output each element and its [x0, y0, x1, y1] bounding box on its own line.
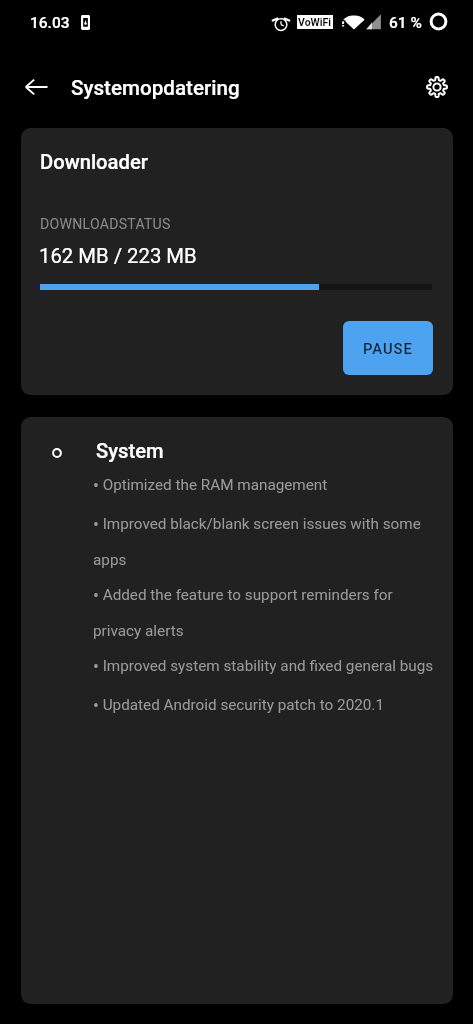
staticText: 61 %	[389, 14, 422, 32]
staticText: • Added the feature to support reminders…	[93, 575, 436, 643]
staticText: • Improved system stability and fixed ge…	[93, 646, 434, 682]
staticText: 162 MB / 223 MB	[39, 244, 197, 268]
staticText: Downloader	[40, 150, 148, 174]
button[interactable]: Settings	[415, 65, 459, 109]
staticText: 16.03	[30, 14, 70, 32]
button[interactable]: System	[21, 417, 453, 1004]
button[interactable]: PAUSE	[343, 321, 433, 375]
staticText: Systemopdatering	[71, 76, 240, 100]
staticText: • Updated Android security patch to 2020…	[93, 685, 384, 721]
staticText: DOWNLOADSTATUS	[40, 216, 171, 233]
staticText: PAUSE	[363, 340, 413, 357]
staticText: • Improved black/blank screen issues wit…	[93, 504, 436, 572]
button[interactable]: Back	[12, 63, 60, 111]
staticText: VoWiFi	[298, 16, 332, 28]
staticText: System	[96, 439, 164, 463]
staticText: • Optimized the RAM management	[93, 465, 328, 501]
